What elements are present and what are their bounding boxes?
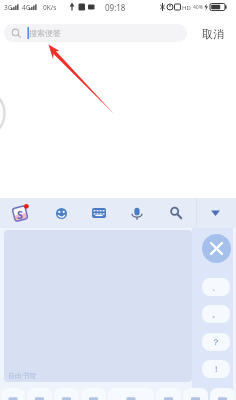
button[interactable] [183,388,208,400]
staticText: HD [182,4,191,12]
button[interactable] [81,388,106,400]
staticText: 取消 [202,27,224,41]
button[interactable] [108,388,154,400]
staticText: 09:18 [105,2,126,13]
button[interactable]: ！ [202,360,230,378]
staticText: ！ [212,364,220,374]
button[interactable]: Voice input [117,198,157,228]
staticText: 40% [193,4,203,11]
button[interactable]: ？ [202,333,230,351]
button[interactable] [54,388,79,400]
button[interactable] [1,388,25,400]
button[interactable]: Close keyboard [202,234,231,263]
staticText: 0K/s [43,3,57,12]
staticText: 。 [212,309,220,319]
button[interactable]: 、 [202,278,230,296]
staticText: S [17,207,24,222]
button[interactable]: Search [157,198,194,228]
button[interactable]: Emoji [42,198,81,228]
button[interactable] [210,388,235,400]
button[interactable] [156,388,181,400]
button[interactable]: 。 [202,305,230,323]
staticText: 、 [212,282,220,292]
button[interactable]: 取消 [189,19,236,48]
button[interactable]: Hide keyboard [197,198,233,228]
button[interactable]: Sogou input [0,198,42,228]
staticText: 3G [4,3,13,12]
button[interactable] [27,388,52,400]
staticText: ？ [212,337,220,347]
staticText: 自由书写 [8,371,36,380]
staticText: 搜索便签 [29,28,61,38]
button[interactable]: Keyboard [81,198,117,228]
button[interactable]: 搜索便签 [4,24,187,42]
staticText: 4G [22,3,31,12]
